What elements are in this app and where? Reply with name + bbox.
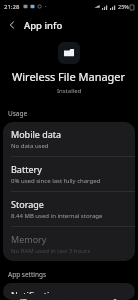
staticText: Installed [57,87,82,95]
staticText: No RAM used in last 3 hours [11,247,91,255]
button[interactable]: Notifications [3,283,135,300]
staticText: Notifications [11,289,65,294]
staticText: Mobile data [11,128,62,140]
staticText: Battery [11,163,42,175]
button[interactable]: Back [0,13,24,37]
staticText: Usage [8,109,28,118]
button[interactable]: Memory [3,227,135,261]
staticText: App info [24,19,63,32]
button[interactable]: Mobile data [3,122,135,156]
staticText: Wireless File Manager [12,69,126,84]
staticText: 25% [118,3,129,10]
staticText: App settings [8,270,47,279]
button[interactable]: Storage [3,192,135,226]
staticText: 8.44 MB used in internal storage [11,212,103,220]
staticText: No data used [11,142,49,150]
staticText: Storage [11,198,44,210]
staticText: 21:28 [4,3,20,11]
staticText: Memory [11,233,47,245]
button[interactable]: Battery [3,157,135,191]
staticText: 0% used since last fully charged [11,177,101,185]
